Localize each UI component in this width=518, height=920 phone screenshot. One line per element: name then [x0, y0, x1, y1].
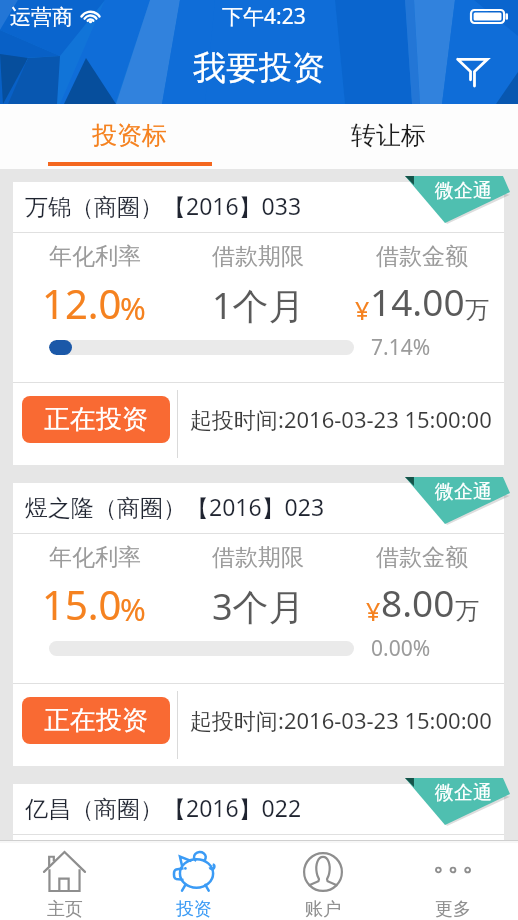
- button[interactable]: 正在投资: [22, 697, 170, 744]
- staticText: 万锦（商圈）【2016】033: [25, 190, 302, 221]
- staticText: 账户: [305, 898, 341, 920]
- staticText: 正在投资: [44, 403, 148, 436]
- staticText: 借款期限: [212, 242, 304, 271]
- staticText: 起投时间:2016-03-23 15:00:00: [190, 705, 492, 735]
- button[interactable]: 投资: [129, 843, 258, 920]
- staticText: 起投时间:2016-03-23 15:00:00: [190, 404, 492, 434]
- staticText: 14.00: [370, 276, 465, 326]
- staticText: 借款金额: [376, 242, 468, 271]
- staticText: 3个月: [212, 582, 305, 631]
- staticText: 8.00: [381, 577, 455, 627]
- staticText: 微企通: [435, 179, 492, 203]
- staticText: ¥: [366, 594, 381, 628]
- staticText: 我要投资: [193, 47, 325, 89]
- staticText: 12.0: [42, 276, 122, 330]
- staticText: 万: [455, 596, 479, 626]
- staticText: 0.00%: [371, 634, 431, 663]
- button[interactable]: 煜之隆（商圈）【2016】023: [13, 483, 504, 766]
- staticText: %: [120, 287, 146, 329]
- button[interactable]: 更多: [388, 843, 518, 920]
- staticText: 更多: [435, 898, 471, 920]
- staticText: 运营商: [10, 4, 73, 30]
- staticText: 亿昌（商圈）【2016】022: [25, 792, 302, 823]
- button[interactable]: 万锦（商圈）【2016】033: [13, 182, 504, 465]
- staticText: 转让标: [351, 120, 426, 151]
- staticText: 微企通: [435, 781, 492, 805]
- staticText: 微企通: [435, 480, 492, 504]
- button[interactable]: Filter: [440, 38, 504, 102]
- staticText: 万: [465, 295, 489, 325]
- button[interactable]: 正在投资: [22, 396, 170, 443]
- staticText: 年化利率: [49, 543, 141, 572]
- staticText: 投资标: [92, 120, 167, 151]
- staticText: 煜之隆（商圈）【2016】023: [25, 491, 325, 522]
- button[interactable]: 投资标: [0, 104, 259, 169]
- staticText: 年化利率: [49, 242, 141, 271]
- staticText: 15.0: [42, 577, 122, 631]
- button[interactable]: 亿昌（商圈）【2016】022: [13, 784, 504, 840]
- button[interactable]: 主页: [0, 843, 129, 920]
- staticText: ¥: [355, 293, 370, 327]
- staticText: 1个月: [212, 281, 305, 330]
- button[interactable]: 账户: [258, 843, 388, 920]
- staticText: 7.14%: [371, 333, 431, 362]
- button[interactable]: 转让标: [259, 104, 518, 169]
- staticText: 借款期限: [212, 543, 304, 572]
- staticText: 投资: [176, 898, 212, 920]
- staticText: 主页: [47, 898, 83, 920]
- staticText: 下午4:23: [222, 2, 306, 31]
- staticText: %: [120, 588, 146, 630]
- staticText: 正在投资: [44, 704, 148, 737]
- staticText: 借款金额: [376, 543, 468, 572]
